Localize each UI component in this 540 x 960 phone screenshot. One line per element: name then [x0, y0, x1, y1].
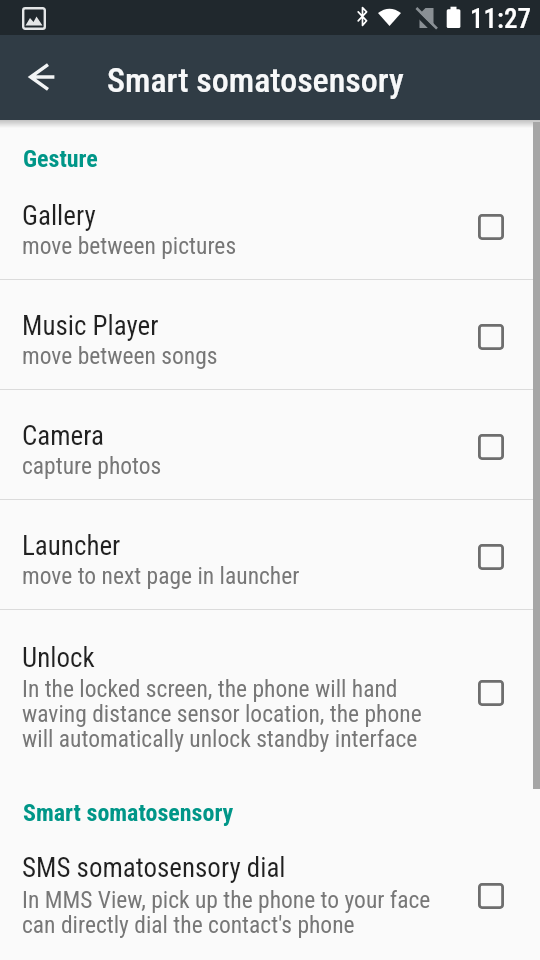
- staticText: Gesture: [23, 145, 98, 173]
- button[interactable]: SMS somatosensory dial: [0, 843, 540, 960]
- staticText: move between songs: [22, 342, 218, 370]
- staticText: move between pictures: [22, 232, 237, 260]
- staticText: 11:27: [470, 3, 531, 35]
- button[interactable]: [28, 63, 56, 91]
- button[interactable]: Unlock: [0, 610, 540, 775]
- button[interactable]: Launcher: [0, 500, 540, 609]
- staticText: Camera: [22, 420, 104, 452]
- staticText: In MMS View, pick up the phone to your f…: [22, 886, 431, 939]
- button[interactable]: Music Player: [0, 280, 540, 389]
- staticText: SMS somatosensory dial: [22, 852, 286, 884]
- staticText: Unlock: [22, 642, 95, 674]
- staticText: Launcher: [22, 530, 121, 562]
- staticText: move to next page in launcher: [22, 562, 300, 590]
- staticText: Smart somatosensory: [107, 60, 404, 100]
- button[interactable]: Gallery: [0, 180, 540, 279]
- staticText: Smart somatosensory: [23, 799, 234, 827]
- button[interactable]: Camera: [0, 390, 540, 499]
- staticText: In the locked screen, the phone will han…: [22, 675, 422, 753]
- staticText: Music Player: [22, 310, 159, 342]
- staticText: Gallery: [22, 200, 96, 232]
- staticText: capture photos: [22, 452, 162, 480]
